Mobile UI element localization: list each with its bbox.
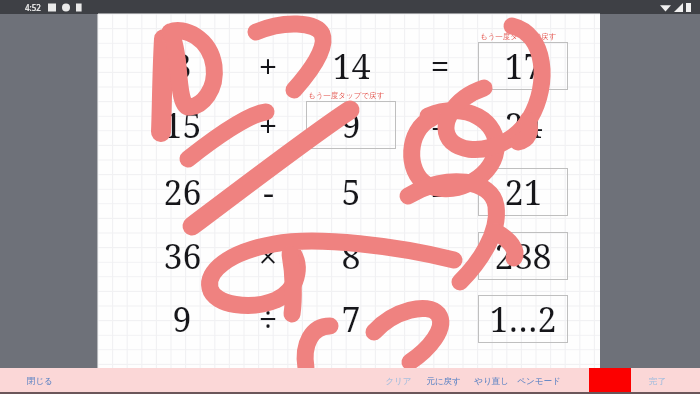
staticText: やり直し: [474, 376, 509, 387]
button[interactable]: 1…2: [478, 295, 568, 343]
staticText: =: [430, 102, 450, 148]
staticText: 閉じる: [27, 376, 53, 387]
staticText: クリア: [385, 376, 412, 387]
button[interactable]: クリア: [375, 368, 421, 394]
staticText: 14: [332, 43, 371, 89]
button[interactable]: 21: [478, 168, 568, 216]
staticText: 完了: [649, 376, 666, 387]
staticText: =: [430, 233, 450, 279]
staticText: =: [430, 169, 450, 215]
staticText: 5: [341, 169, 361, 215]
staticText: 24: [504, 102, 543, 148]
staticText: 288: [494, 233, 552, 279]
staticText: 15: [163, 102, 202, 148]
staticText: 9: [172, 296, 192, 342]
button[interactable]: 288: [478, 232, 568, 280]
button[interactable]: ペンの色: [589, 368, 631, 394]
button[interactable]: 元に戻す: [420, 368, 466, 394]
button[interactable]: やり直し: [468, 368, 514, 394]
staticText: 元に戻す: [426, 376, 461, 387]
staticText: 9: [341, 102, 361, 148]
staticText: 4:52: [25, 2, 41, 13]
staticText: 7: [341, 296, 361, 342]
staticText: 17: [504, 43, 543, 89]
staticText: -: [263, 169, 274, 215]
button[interactable]: 3: [98, 14, 600, 368]
button[interactable]: 9: [306, 101, 396, 149]
staticText: =: [430, 296, 450, 342]
button[interactable]: 17: [478, 42, 568, 90]
staticText: 36: [163, 233, 202, 279]
staticText: もう一度タップで戻す: [480, 32, 557, 41]
button[interactable]: 閉じる: [17, 368, 63, 394]
button[interactable]: ペンモード: [516, 368, 562, 394]
staticText: ペンモード: [517, 376, 561, 387]
button[interactable]: 完了: [634, 368, 680, 394]
staticText: 8: [341, 233, 361, 279]
staticText: +: [258, 43, 278, 89]
staticText: +: [258, 102, 278, 148]
staticText: ×: [258, 233, 278, 279]
staticText: もう一度タップで戻す: [308, 91, 385, 100]
staticText: ÷: [258, 296, 278, 342]
staticText: 26: [163, 169, 202, 215]
staticText: =: [430, 43, 450, 89]
staticText: 21: [504, 169, 543, 215]
staticText: 3: [172, 43, 192, 89]
staticText: 1…2: [489, 296, 557, 342]
